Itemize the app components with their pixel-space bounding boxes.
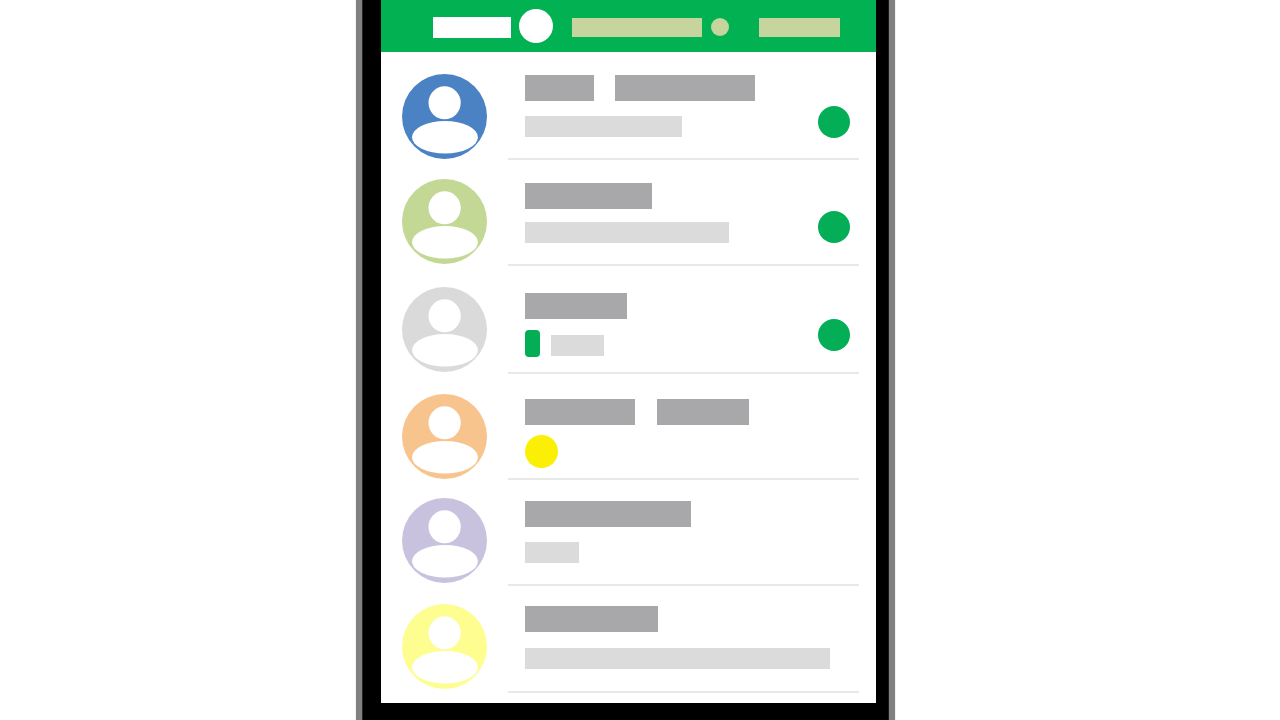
other: Away status [525, 435, 558, 468]
other: Online status [818, 319, 850, 351]
button[interactable] [381, 585, 876, 693]
button[interactable]: Away status [381, 373, 876, 481]
other: Online status [818, 106, 850, 138]
button[interactable]: Online status [381, 266, 876, 374]
button[interactable]: Online status [381, 52, 876, 161]
button[interactable]: More options [711, 18, 729, 36]
button[interactable]: Online status [381, 159, 876, 267]
button[interactable] [381, 479, 876, 587]
other: Online status [818, 211, 850, 243]
button[interactable]: Account [519, 9, 553, 43]
